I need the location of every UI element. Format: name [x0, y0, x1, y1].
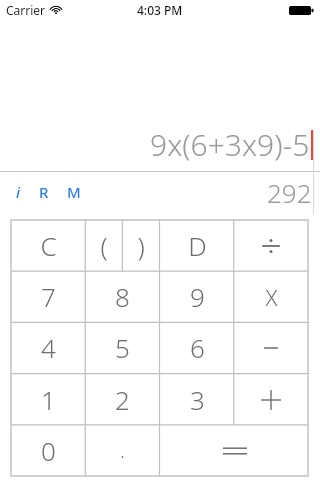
staticText: 4:03 PM — [137, 2, 183, 18]
button[interactable]: . — [85, 425, 159, 476]
staticText: 3 — [190, 382, 205, 417]
button[interactable]: ) — [122, 220, 159, 271]
button[interactable]: 0 — [11, 425, 85, 476]
staticText: 1 — [41, 382, 56, 417]
staticText: 0 — [41, 433, 56, 468]
button[interactable]: D — [160, 220, 234, 271]
button[interactable]: 9 — [160, 271, 234, 322]
button[interactable]: 8 — [85, 271, 159, 322]
button[interactable]: i — [12, 180, 25, 204]
staticText: 2 — [115, 382, 130, 417]
staticText: 7 — [41, 279, 56, 314]
button[interactable]: Divide — [234, 220, 308, 271]
button[interactable]: Equals — [160, 425, 309, 476]
button[interactable]: C — [11, 220, 85, 271]
staticText: 9x(6+3x9)-5 — [150, 124, 310, 165]
staticText: M — [67, 182, 81, 202]
staticText: 8 — [115, 279, 130, 314]
staticText: Carrier — [6, 2, 46, 18]
button[interactable]: Minus — [234, 322, 308, 373]
button[interactable]: 2 — [85, 374, 159, 425]
button[interactable]: 4 — [11, 322, 85, 373]
button[interactable]: 6 — [160, 322, 234, 373]
staticText: 6 — [190, 330, 205, 365]
staticText: 5 — [115, 330, 130, 365]
button[interactable]: R — [35, 180, 53, 204]
button[interactable]: ( — [85, 220, 122, 271]
staticText: 9 — [190, 279, 205, 314]
staticText: 4 — [41, 330, 56, 365]
button[interactable]: 1 — [11, 374, 85, 425]
staticText: D — [188, 228, 207, 263]
button[interactable]: Multiply — [234, 271, 308, 322]
button[interactable]: M — [63, 180, 85, 204]
button[interactable]: 5 — [85, 322, 159, 373]
staticText: X — [265, 282, 278, 312]
button[interactable]: Plus — [234, 374, 308, 425]
staticText: . — [120, 437, 125, 464]
staticText: R — [39, 182, 49, 202]
staticText: C — [40, 228, 57, 263]
staticText: ) — [137, 228, 145, 263]
staticText: i — [16, 182, 21, 202]
staticText: 292 — [267, 175, 312, 210]
button[interactable]: 3 — [160, 374, 234, 425]
button[interactable]: 7 — [11, 271, 85, 322]
staticText: ( — [100, 228, 108, 263]
